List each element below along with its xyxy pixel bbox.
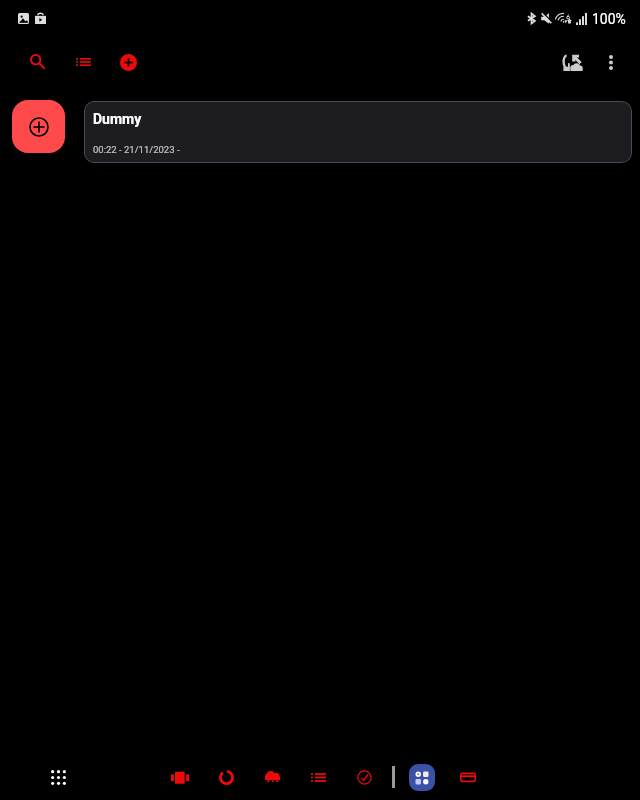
button[interactable]: New recording bbox=[12, 100, 65, 153]
button[interactable]: Dummy bbox=[84, 101, 632, 163]
button[interactable]: Wallet bbox=[445, 761, 491, 793]
button[interactable]: Tasks bbox=[341, 761, 387, 793]
button[interactable]: Loading bbox=[203, 761, 249, 793]
button[interactable]: Search bbox=[18, 43, 56, 81]
staticText: Dummy bbox=[93, 111, 142, 127]
button[interactable]: Add bbox=[109, 43, 147, 81]
button[interactable]: List view bbox=[64, 43, 102, 81]
button[interactable]: List bbox=[295, 761, 341, 793]
button[interactable]: Backup bbox=[554, 43, 592, 81]
button[interactable]: Play Store bbox=[409, 764, 435, 791]
staticText: 100% bbox=[592, 11, 626, 27]
staticText: 00:22 - 21/11/2023 - bbox=[93, 144, 180, 155]
button[interactable]: Vibrate bbox=[157, 761, 203, 793]
button[interactable]: All apps bbox=[42, 761, 74, 793]
button[interactable]: Weather bbox=[249, 761, 295, 793]
button[interactable]: More options bbox=[592, 43, 630, 81]
